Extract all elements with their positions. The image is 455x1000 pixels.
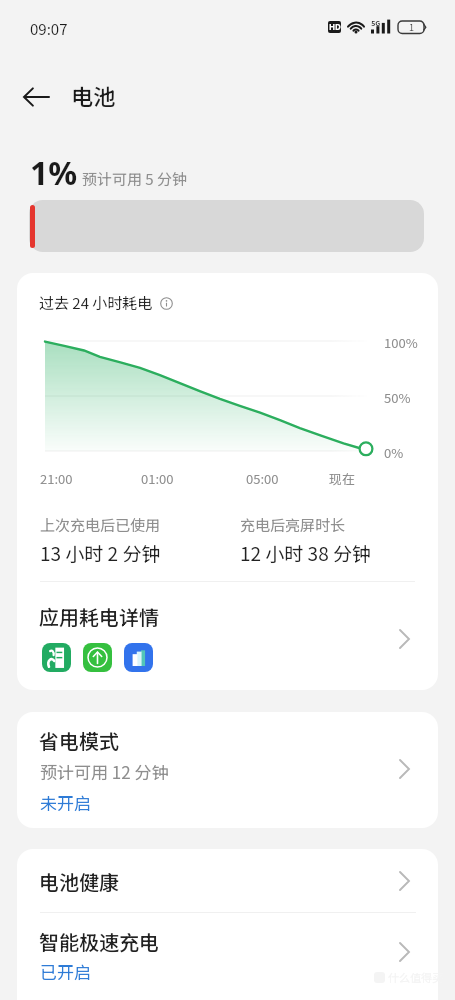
- staticText: 预计可用 5 分钟: [82, 168, 188, 190]
- staticText: 什么值得买: [388, 969, 443, 985]
- staticText: 0%: [384, 443, 404, 462]
- staticText: 应用耗电详情: [39, 602, 159, 631]
- staticText: 省电模式: [39, 726, 119, 755]
- staticText: 已开启: [40, 959, 91, 984]
- staticText: 13 小时 2 分钟: [40, 539, 161, 567]
- staticText: HD: [329, 21, 341, 33]
- staticText: 电池健康: [39, 867, 119, 896]
- staticText: 现在: [329, 469, 356, 488]
- button[interactable]: Back: [15, 76, 57, 118]
- staticText: 电池: [71, 79, 116, 111]
- staticText: 充电后亮屏时长: [240, 514, 346, 536]
- staticText: 1: [409, 21, 414, 34]
- staticText: 09:07: [30, 18, 68, 40]
- staticText: 01:00: [141, 469, 174, 488]
- staticText: 5G: [371, 18, 381, 28]
- staticText: 21:00: [40, 469, 73, 488]
- staticText: 预计可用 12 分钟: [40, 759, 169, 784]
- staticText: 过去 24 小时耗电: [39, 292, 153, 314]
- staticText: 50%: [384, 388, 411, 407]
- staticText: 100%: [384, 333, 418, 352]
- button[interactable]: 智能极速充电: [17, 913, 438, 1000]
- staticText: 05:00: [246, 469, 279, 488]
- button[interactable]: 应用耗电详情: [17, 582, 438, 690]
- button[interactable]: 电池健康: [17, 849, 438, 912]
- staticText: 1%: [30, 151, 78, 195]
- staticText: 上次充电后已使用: [40, 514, 161, 536]
- button[interactable]: 省电模式: [17, 712, 438, 828]
- staticText: 智能极速充电: [39, 927, 159, 956]
- staticText: 未开启: [40, 790, 91, 815]
- staticText: 12 小时 38 分钟: [240, 539, 371, 567]
